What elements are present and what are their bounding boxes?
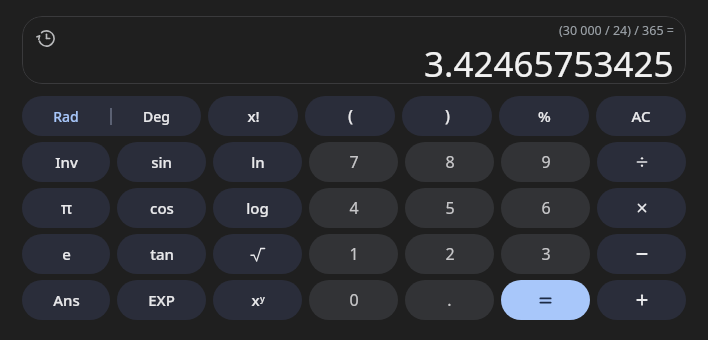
button[interactable]: π — [22, 188, 110, 228]
button[interactable]: % — [499, 96, 589, 136]
button[interactable]: ) — [402, 96, 492, 136]
staticText: cos — [150, 198, 174, 218]
staticText: ( — [348, 105, 353, 127]
staticText: 3 — [541, 243, 551, 265]
staticText: (30 000 / 24) / 365 = — [559, 22, 674, 39]
staticText: Inv — [55, 152, 78, 172]
staticText: 4 — [349, 197, 359, 219]
staticText: log — [246, 198, 269, 218]
staticText: 2 — [445, 243, 455, 265]
button[interactable]: Equals — [501, 280, 590, 320]
button[interactable]: Ans — [22, 280, 110, 320]
staticText: % — [538, 106, 551, 126]
button[interactable]: tan — [117, 234, 206, 274]
button[interactable]: 1 — [309, 234, 398, 274]
staticText: e — [62, 244, 71, 264]
button[interactable]: Minus — [597, 234, 686, 274]
button[interactable]: Plus — [597, 280, 686, 320]
button[interactable]: Inv — [22, 142, 110, 182]
staticText: tan — [150, 244, 174, 264]
button[interactable]: 8 — [405, 142, 494, 182]
button[interactable]: e — [22, 234, 110, 274]
staticText: EXP — [148, 290, 175, 310]
staticText: 8 — [445, 151, 455, 173]
staticText: 1 — [349, 243, 359, 265]
button[interactable]: AC — [596, 96, 686, 136]
button[interactable]: 4 — [309, 188, 398, 228]
button[interactable]: 3 — [501, 234, 590, 274]
staticText: 0 — [349, 289, 359, 311]
button[interactable]: 6 — [501, 188, 590, 228]
button[interactable]: cos — [117, 188, 206, 228]
staticText: sin — [151, 152, 172, 172]
button[interactable]: History — [31, 23, 61, 53]
button[interactable]: log — [213, 188, 302, 228]
staticText: AC — [631, 106, 651, 126]
button[interactable]: ln — [213, 142, 302, 182]
staticText: 6 — [541, 197, 551, 219]
button[interactable]: 0 — [309, 280, 398, 320]
button[interactable]: 7 — [309, 142, 398, 182]
staticText: 9 — [541, 151, 551, 173]
staticText: . — [447, 289, 452, 311]
staticText: 7 — [349, 151, 359, 173]
staticText: ) — [445, 105, 450, 127]
button[interactable]: x to the power of y — [213, 280, 302, 320]
staticText: x — [251, 290, 260, 310]
staticText: Ans — [53, 290, 80, 310]
staticText: y — [260, 292, 265, 304]
staticText: x! — [247, 106, 260, 126]
button[interactable]: ( — [305, 96, 395, 136]
staticText: 5 — [445, 197, 455, 219]
button[interactable]: Deg — [112, 96, 201, 136]
button[interactable]: Multiply — [597, 188, 686, 228]
button[interactable]: 2 — [405, 234, 494, 274]
button[interactable]: . — [405, 280, 494, 320]
staticText: 3.42465753425 — [424, 40, 674, 80]
button[interactable]: x! — [208, 96, 298, 136]
button[interactable]: Rad — [22, 96, 110, 136]
button[interactable]: Square root — [213, 234, 302, 274]
staticText: π — [61, 197, 72, 219]
button[interactable]: 9 — [501, 142, 590, 182]
button[interactable]: sin — [117, 142, 206, 182]
button[interactable]: Divide — [597, 142, 686, 182]
button[interactable]: 5 — [405, 188, 494, 228]
staticText: ln — [251, 152, 265, 172]
button[interactable]: EXP — [117, 280, 206, 320]
staticText: Rad — [53, 107, 79, 126]
staticText: Deg — [143, 107, 170, 126]
